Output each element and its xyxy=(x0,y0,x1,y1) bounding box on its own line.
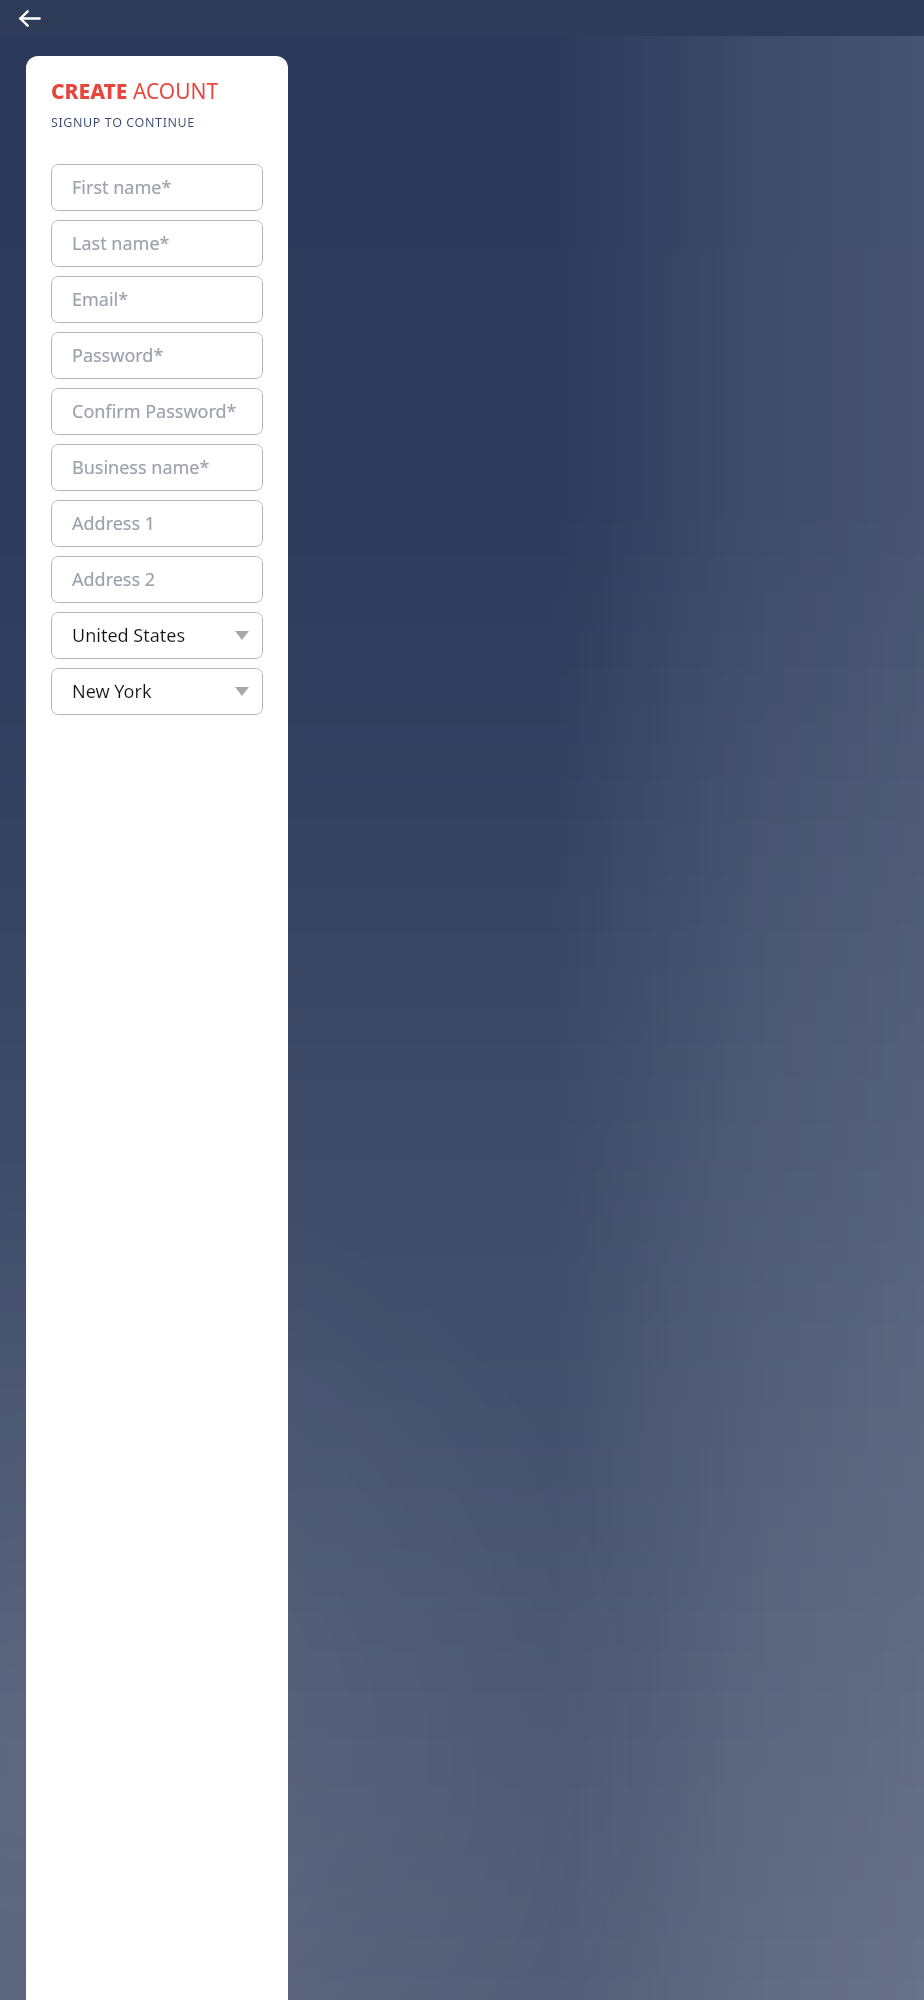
button[interactable]: Password* xyxy=(51,332,263,379)
staticText: First name* xyxy=(72,175,172,200)
button[interactable]: Last name* xyxy=(51,220,263,267)
staticText: Last name* xyxy=(72,231,170,256)
button[interactable]: Address 1 xyxy=(51,500,263,547)
staticText: CREATE ACOUNT xyxy=(51,77,219,106)
staticText: United States xyxy=(72,623,186,648)
button[interactable]: New York xyxy=(51,668,263,715)
button[interactable]: United States xyxy=(51,612,263,659)
staticText: SIGNUP TO CONTINUE xyxy=(51,114,195,131)
button[interactable]: Business name* xyxy=(51,444,263,491)
button[interactable]: Confirm Password* xyxy=(51,388,263,435)
button[interactable]: Back xyxy=(7,0,51,36)
staticText: Business name* xyxy=(72,455,210,480)
staticText: Confirm Password* xyxy=(72,399,237,424)
button[interactable]: Address 2 xyxy=(51,556,263,603)
staticText: Password* xyxy=(72,343,164,368)
staticText: Address 1 xyxy=(72,511,156,536)
staticText: Email* xyxy=(72,287,129,312)
staticText: New York xyxy=(72,679,152,704)
button[interactable]: First name* xyxy=(51,164,263,211)
staticText: Address 2 xyxy=(72,567,156,592)
button[interactable]: Email* xyxy=(51,276,263,323)
